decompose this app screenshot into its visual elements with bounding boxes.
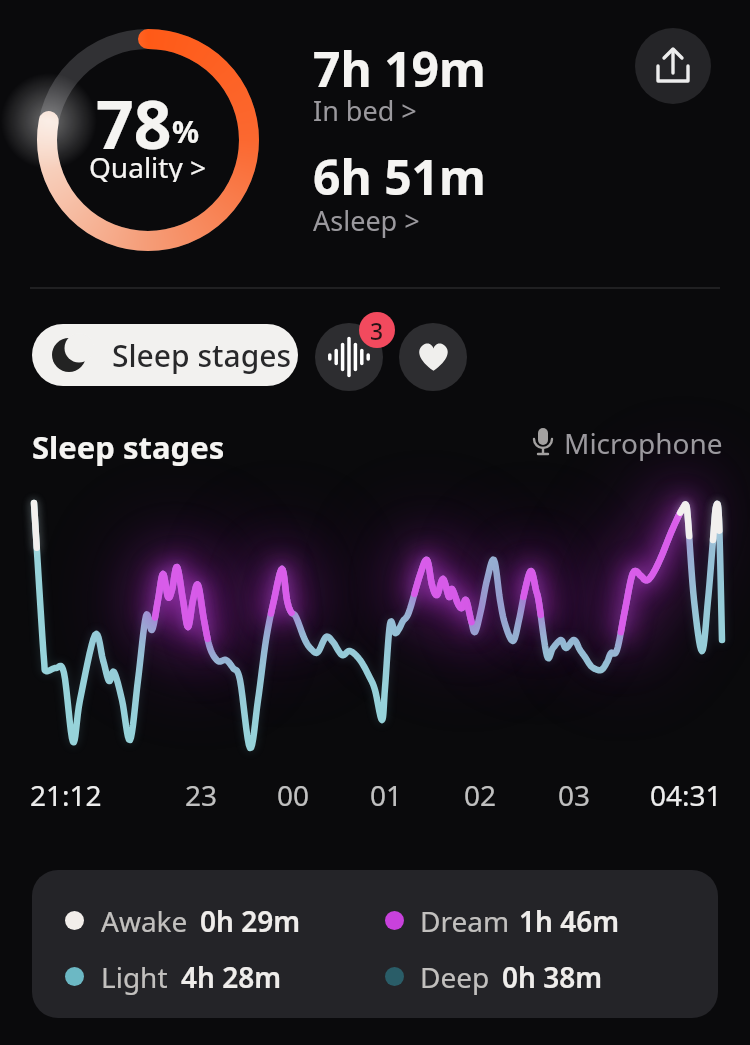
button[interactable] <box>399 323 467 391</box>
button[interactable]: In bed > <box>313 92 417 129</box>
staticText: % <box>172 111 200 152</box>
staticText: 02 <box>464 776 497 814</box>
staticText: Microphone <box>564 424 723 462</box>
staticText: Deep <box>420 958 490 996</box>
button[interactable]: Quality > <box>60 148 236 182</box>
staticText: 04:31 <box>650 776 722 814</box>
staticText: 00 <box>277 776 310 814</box>
staticText: Light <box>101 958 168 996</box>
staticText: 21:12 <box>30 776 102 814</box>
button[interactable]: Asleep > <box>313 202 420 239</box>
staticText: 1h 46m <box>519 902 620 940</box>
staticText: 7h 19m <box>313 36 486 101</box>
staticText: 4h 28m <box>181 958 282 996</box>
staticText: Quality > <box>89 148 207 182</box>
button[interactable]: Microphone <box>530 424 723 462</box>
staticText: 03 <box>558 776 591 814</box>
staticText: 01 <box>370 776 403 814</box>
staticText: Sleep stages <box>112 335 292 376</box>
staticText: Dream <box>420 902 510 940</box>
button[interactable] <box>315 323 383 391</box>
staticText: 78 <box>96 78 172 162</box>
staticText: 0h 29m <box>200 902 301 940</box>
staticText: 6h 51m <box>313 144 486 209</box>
staticText: Sleep stages <box>32 426 225 468</box>
staticText: 3 <box>370 315 384 346</box>
staticText: 23 <box>185 776 218 814</box>
staticText: Awake <box>101 902 188 940</box>
staticText: Asleep > <box>313 202 420 239</box>
staticText: 0h 38m <box>502 958 603 996</box>
button[interactable]: Sleep stages <box>32 324 298 386</box>
button[interactable] <box>635 28 711 104</box>
staticText: In bed > <box>313 92 417 129</box>
